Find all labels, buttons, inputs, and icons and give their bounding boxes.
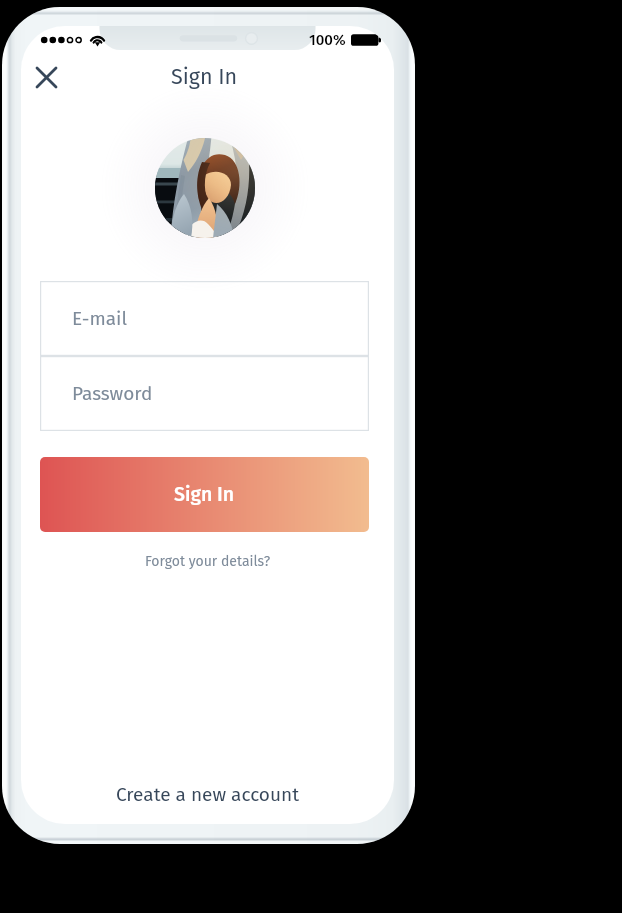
button[interactable]: Forgot your details?: [21, 553, 394, 570]
button[interactable]: Sign In: [40, 457, 369, 532]
button[interactable]: Password: [40, 356, 369, 431]
staticText: E-mail: [72, 307, 127, 330]
button[interactable]: Close: [25, 56, 67, 98]
button[interactable]: E-mail: [40, 281, 369, 356]
staticText: 100%: [309, 31, 346, 49]
staticText: Sign In: [171, 64, 238, 90]
button[interactable]: Create a new account: [21, 783, 394, 806]
staticText: Sign In: [174, 483, 235, 506]
staticText: Password: [72, 382, 153, 405]
